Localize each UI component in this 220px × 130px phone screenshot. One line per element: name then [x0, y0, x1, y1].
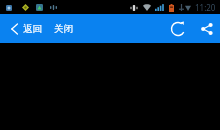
staticText: 关闭 [54, 23, 73, 35]
staticText: 11:20 [195, 2, 216, 13]
button[interactable]: Share [195, 17, 219, 41]
button[interactable]: 关闭 [46, 14, 81, 43]
staticText: 返回 [23, 23, 42, 35]
button[interactable]: 返回 [0, 14, 46, 43]
button[interactable]: Refresh [166, 17, 190, 41]
